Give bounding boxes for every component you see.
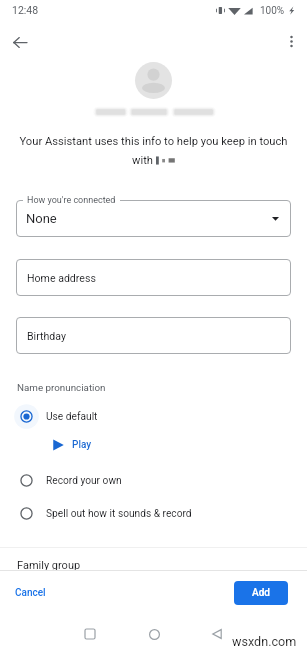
staticText: 100%	[260, 5, 285, 17]
staticText: wsxdn.com	[232, 634, 297, 649]
button[interactable]: Home address	[16, 259, 291, 296]
staticText: How you're connected	[27, 195, 116, 206]
button[interactable]: Recent apps	[79, 623, 101, 645]
button[interactable]: Spell out how it sounds & record	[0, 507, 307, 520]
button[interactable]: Back	[206, 623, 228, 645]
button[interactable]: Back	[6, 28, 34, 56]
button[interactable]: None	[16, 200, 291, 237]
staticText: None	[26, 211, 57, 226]
button[interactable]: Home	[143, 623, 165, 645]
staticText: Play	[72, 439, 92, 451]
button[interactable]: Record your own	[0, 474, 307, 487]
button[interactable]: Play	[53, 437, 92, 453]
staticText: Record your own	[46, 475, 122, 487]
staticText: Spell out how it sounds & record	[46, 508, 192, 520]
staticText: Family group	[17, 559, 81, 572]
button[interactable]: More options	[277, 27, 305, 55]
staticText: Use default	[46, 411, 98, 423]
staticText: Name pronunciation	[17, 382, 106, 393]
button[interactable]: Birthday	[16, 317, 291, 354]
button[interactable]: Cancel	[0, 587, 46, 599]
staticText: Home address	[27, 272, 96, 284]
staticText: Add	[252, 587, 270, 599]
staticText: 12:48	[12, 4, 39, 16]
staticText: Your Assistant uses this info to help yo…	[0, 135, 307, 148]
staticText: Birthday	[27, 330, 66, 342]
staticText: with	[132, 154, 153, 167]
button[interactable]: Add	[234, 581, 288, 605]
button[interactable]: Use default	[0, 410, 307, 423]
